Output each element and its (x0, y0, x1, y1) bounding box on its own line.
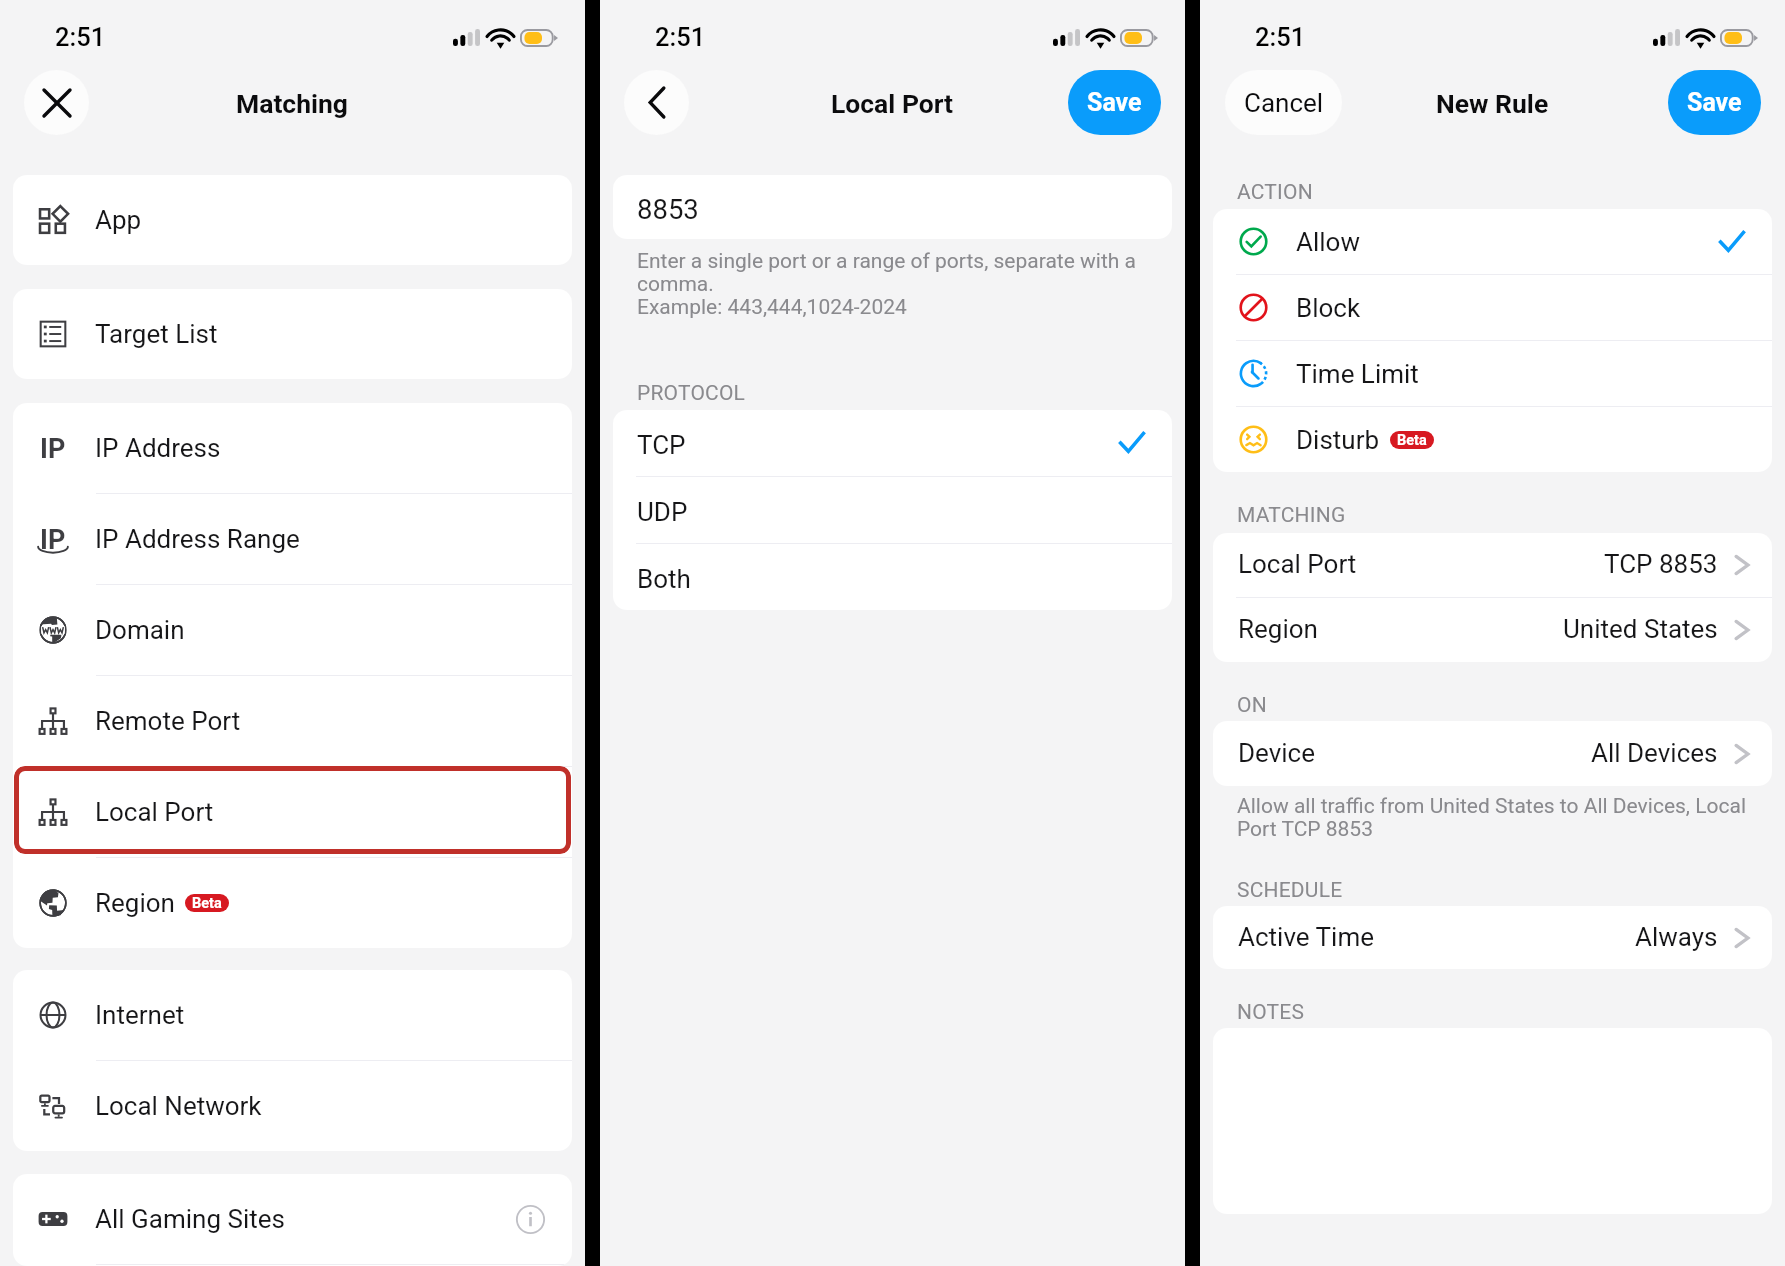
staticText: Remote Port (95, 706, 241, 736)
staticText: Local Port (831, 88, 954, 119)
staticText: Active Time (1238, 922, 1374, 952)
staticText: SCHEDULE (1237, 878, 1343, 903)
staticText: Allow (1296, 227, 1360, 257)
button[interactable]: Region (13, 858, 572, 948)
button[interactable]: IP (13, 403, 572, 493)
staticText: All Devices (1591, 738, 1718, 768)
staticText: Matching (236, 88, 349, 119)
staticText: UDP (637, 497, 688, 527)
staticText: United States (1563, 614, 1718, 644)
staticText: Device (1238, 738, 1315, 768)
staticText: ACTION (1237, 180, 1313, 205)
staticText: IP (40, 524, 66, 554)
button[interactable]: Domain (13, 585, 572, 675)
staticText: Allow all traffic from United States to … (1237, 794, 1747, 841)
staticText: Local Port (95, 797, 214, 827)
staticText: NOTES (1237, 1000, 1305, 1025)
staticText: Cancel (1244, 88, 1324, 118)
staticText: PROTOCOL (637, 381, 746, 406)
staticText: MATCHING (1237, 503, 1346, 528)
button[interactable]: Back (624, 70, 689, 135)
button[interactable]: Local Port (1213, 533, 1772, 597)
button[interactable]: All Gaming Sites (13, 1174, 572, 1264)
staticText: IP Address Range (95, 524, 300, 554)
staticText: New Rule (1436, 88, 1549, 119)
staticText: All Gaming Sites (95, 1204, 285, 1234)
staticText: Block (1296, 293, 1361, 323)
staticText: 2:51 (655, 22, 706, 52)
button[interactable]: Info (506, 1195, 554, 1243)
button[interactable]: Block (1213, 275, 1772, 340)
staticText: Disturb (1296, 425, 1380, 455)
staticText: Region (1238, 614, 1318, 644)
button[interactable]: 8853 (613, 175, 1172, 239)
staticText: Both (637, 564, 691, 594)
button[interactable]: Cancel (1225, 70, 1342, 135)
staticText: Save (1687, 88, 1742, 117)
staticText: Time Limit (1296, 359, 1419, 389)
staticText: TCP 8853 (1604, 549, 1718, 579)
button[interactable]: Internet (13, 970, 572, 1060)
button[interactable]: Remote Port (13, 676, 572, 766)
staticText: Enter a single port or a range of ports,… (637, 249, 1136, 319)
staticText: Save (1087, 88, 1142, 117)
button[interactable]: Time Limit (1213, 341, 1772, 406)
staticText: Always (1635, 922, 1718, 952)
staticText: Local Port (1238, 549, 1357, 579)
button[interactable]: Target List (13, 289, 572, 379)
button[interactable]: Save (1068, 70, 1161, 135)
staticText: Beta (1397, 432, 1427, 449)
button[interactable]: Region (1213, 598, 1772, 662)
staticText: Internet (95, 1000, 185, 1030)
button[interactable]: TCP (613, 410, 1172, 476)
button[interactable]: Local Network (13, 1061, 572, 1151)
button[interactable]: Disturb (1213, 407, 1772, 472)
staticText: IP (40, 433, 66, 463)
staticText: IP Address (95, 433, 221, 463)
staticText: TCP (637, 430, 686, 460)
staticText: App (95, 205, 142, 235)
staticText: Region (95, 888, 175, 918)
staticText: Domain (95, 615, 185, 645)
button[interactable]: Allow (1213, 209, 1772, 274)
button[interactable]: Active Time (1213, 906, 1772, 969)
button[interactable]: Both (613, 544, 1172, 610)
staticText: Target List (95, 319, 218, 349)
button[interactable]: IP (13, 494, 572, 584)
staticText: 2:51 (1255, 22, 1306, 52)
button[interactable]: Device (1213, 721, 1772, 786)
staticText: Beta (192, 895, 222, 912)
staticText: 2:51 (55, 22, 106, 52)
staticText: Local Network (95, 1091, 262, 1121)
button[interactable]: UDP (613, 477, 1172, 543)
button[interactable]: Save (1668, 70, 1761, 135)
staticText: 8853 (637, 193, 699, 225)
button[interactable]: Close (24, 70, 89, 135)
button[interactable]: App (13, 175, 572, 265)
staticText: ON (1237, 693, 1267, 718)
button[interactable]: Local Port (13, 767, 572, 857)
